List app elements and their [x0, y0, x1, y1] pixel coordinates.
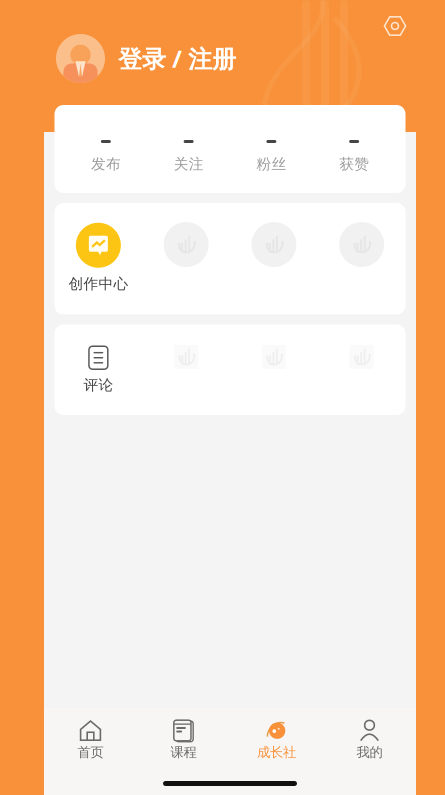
staticText: 课程 — [170, 744, 196, 760]
button[interactable]: 我的 — [323, 719, 416, 760]
staticText: 发布 — [91, 155, 121, 173]
staticText: 登录 / 注册 — [118, 43, 236, 74]
button[interactable] — [318, 222, 406, 293]
button[interactable]: 首页 — [44, 719, 137, 760]
staticText: 评论 — [83, 376, 113, 394]
button[interactable]: 成长社 — [230, 719, 323, 760]
button[interactable]: 创作中心 — [54, 223, 142, 293]
button[interactable] — [142, 222, 230, 293]
button[interactable]: 粉丝 — [230, 125, 313, 173]
staticText: 首页 — [77, 744, 103, 760]
button[interactable]: 获赞 — [313, 125, 396, 173]
staticText: 成长社 — [257, 744, 296, 760]
staticText: 粉丝 — [256, 155, 286, 173]
staticText: 获赞 — [339, 155, 369, 173]
button[interactable]: 关注 — [147, 125, 230, 173]
button[interactable]: 评论 — [54, 346, 142, 394]
button[interactable]: 发布 — [64, 125, 147, 173]
button[interactable] — [230, 222, 318, 293]
button[interactable]: 课程 — [137, 719, 230, 760]
staticText: 创作中心 — [68, 275, 128, 293]
staticText: 关注 — [174, 155, 204, 173]
staticText: 我的 — [356, 744, 382, 760]
button[interactable]: 设置 — [377, 8, 413, 44]
